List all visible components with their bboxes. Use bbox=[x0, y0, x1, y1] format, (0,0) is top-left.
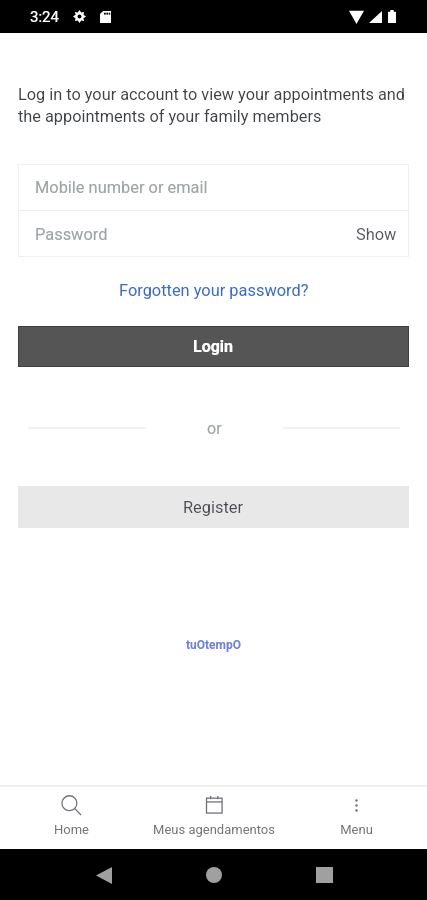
button[interactable]: Login bbox=[18, 326, 409, 367]
button[interactable]: Password bbox=[18, 211, 409, 257]
staticText: Login bbox=[193, 337, 234, 356]
button[interactable]: Home bbox=[179, 853, 249, 897]
button[interactable]: Menu bbox=[285, 787, 427, 849]
button[interactable]: Meus agendamentos bbox=[143, 787, 285, 849]
button[interactable]: Forgotten your password? bbox=[113, 278, 315, 303]
button[interactable]: Home bbox=[0, 787, 143, 849]
button[interactable]: Back bbox=[69, 853, 139, 897]
button[interactable]: Register bbox=[18, 486, 409, 528]
staticText: 3:24 bbox=[30, 8, 59, 26]
staticText: Password bbox=[35, 225, 356, 244]
staticText: Mobile number or email bbox=[35, 178, 208, 197]
staticText: Menu bbox=[340, 822, 373, 837]
staticText: Show bbox=[356, 225, 397, 244]
staticText: Home bbox=[54, 822, 89, 837]
button[interactable]: Mobile number or email bbox=[18, 164, 409, 210]
button[interactable]: Recent apps bbox=[289, 853, 359, 897]
staticText: or bbox=[207, 419, 222, 438]
staticText: tuOtempO bbox=[186, 638, 242, 652]
staticText: Meus agendamentos bbox=[153, 822, 275, 837]
staticText: Register bbox=[183, 498, 244, 517]
staticText: Log in to your account to view your appo… bbox=[18, 85, 411, 126]
